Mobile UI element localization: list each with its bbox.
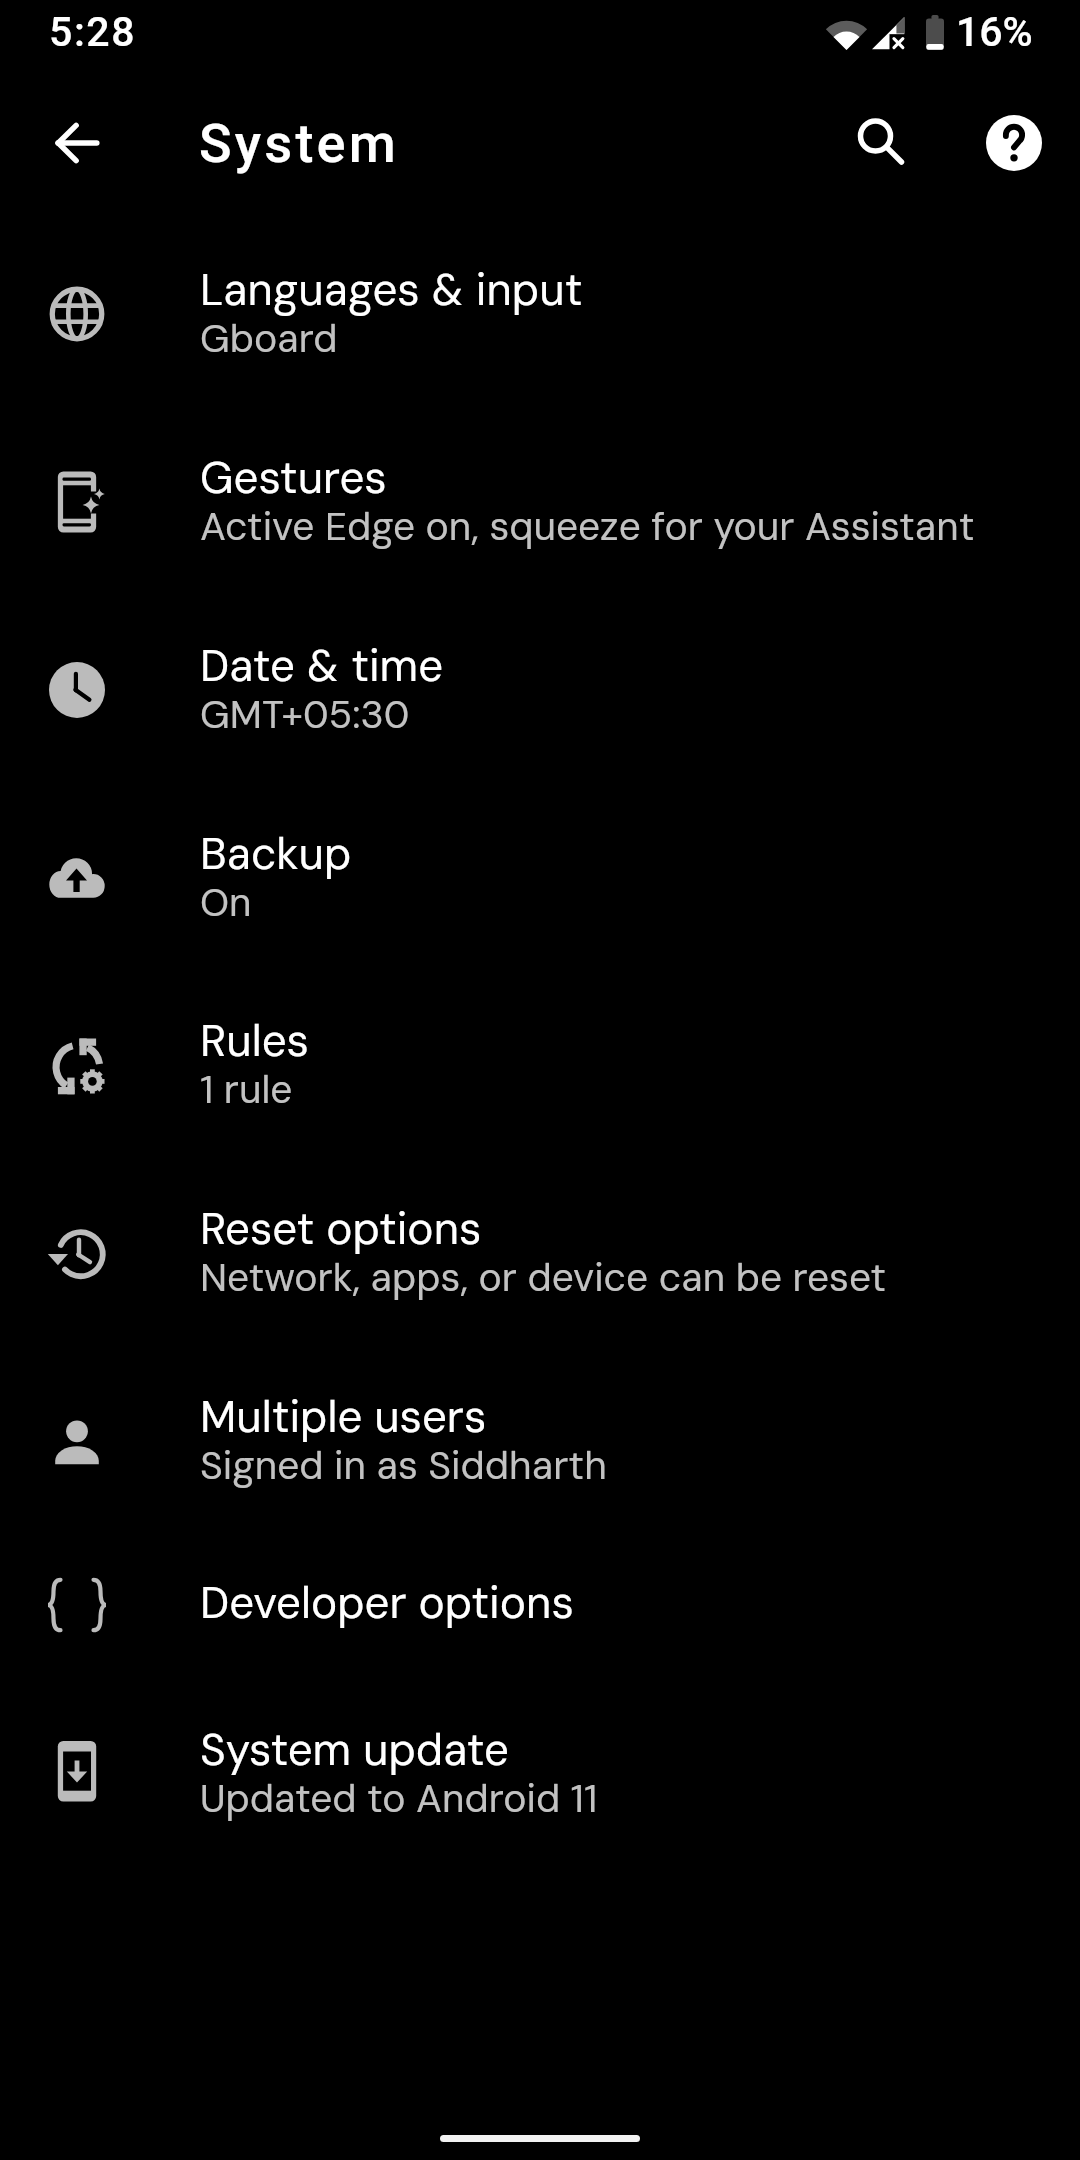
staticText: On xyxy=(200,877,252,928)
button[interactable]: Languages & input xyxy=(0,225,1080,413)
staticText: System xyxy=(199,112,399,175)
button[interactable]: Backup xyxy=(0,789,1080,977)
staticText: 16% xyxy=(956,8,1033,56)
staticText: Rules xyxy=(200,1012,309,1069)
button[interactable]: Search xyxy=(832,93,928,189)
staticText: Gestures xyxy=(200,449,387,506)
button[interactable]: Reset options xyxy=(0,1164,1080,1352)
button[interactable]: Date & time xyxy=(0,601,1080,789)
staticText: GMT+05:30 xyxy=(200,689,410,740)
button[interactable]: Multiple users xyxy=(0,1352,1080,1540)
staticText: 1 rule xyxy=(200,1064,293,1115)
button[interactable]: Developer options xyxy=(0,1538,1080,1685)
staticText: Reset options xyxy=(200,1200,482,1257)
staticText: Network, apps, or device can be reset xyxy=(200,1252,887,1303)
staticText: Backup xyxy=(200,825,352,882)
button[interactable]: Rules xyxy=(0,976,1080,1164)
staticText: 5:28 xyxy=(49,8,137,56)
staticText: Developer options xyxy=(200,1574,574,1631)
staticText: Languages & input xyxy=(200,261,583,318)
button[interactable]: Gestures xyxy=(0,413,1080,601)
staticText: Gboard xyxy=(200,313,338,364)
staticText: Multiple users xyxy=(200,1388,487,1445)
staticText: Active Edge on, squeeze for your Assista… xyxy=(200,501,975,552)
staticText: Date & time xyxy=(200,637,444,694)
staticText: Signed in as Siddharth xyxy=(200,1440,607,1491)
staticText: Updated to Android 11 xyxy=(200,1773,598,1824)
button[interactable]: Back xyxy=(29,95,125,191)
button[interactable]: System update xyxy=(0,1685,1080,1873)
button[interactable]: Help xyxy=(966,95,1062,191)
staticText: System update xyxy=(200,1721,509,1778)
